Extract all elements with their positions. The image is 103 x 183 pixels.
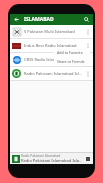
button[interactable]: Stop xyxy=(84,155,92,163)
staticText: Radio Pakistani Islamabad xyxy=(21,154,61,158)
button[interactable]: Radio Pakistani Islamabad xyxy=(10,153,93,164)
button[interactable]: Back xyxy=(12,15,21,24)
button[interactable]: Radio Pakistani Islamabad Islamabad xyxy=(10,67,93,80)
button[interactable]: CBSS Radio Islamabad xyxy=(10,53,93,66)
staticText: ISLAMABAD xyxy=(24,16,54,23)
staticText: Radio Pakistani Islamabad Islamabad xyxy=(21,158,84,163)
button[interactable]: Indus Best Radio Islamabad xyxy=(10,39,93,52)
staticText: Indus Best Radio Islamabad xyxy=(24,43,84,48)
staticText: Add to Favorite xyxy=(57,50,83,55)
button[interactable]: Search xyxy=(82,15,91,24)
staticText: Radio Pakistani Islamabad Islamabad xyxy=(24,71,84,76)
button[interactable]: Add to Favorite xyxy=(54,48,90,57)
staticText: Share to Friends xyxy=(57,59,85,64)
button[interactable]: Share to Friends xyxy=(54,57,90,66)
button[interactable]: More options xyxy=(84,39,91,52)
button[interactable]: More options xyxy=(84,53,91,66)
button[interactable]: More options xyxy=(84,25,91,38)
staticText: 5 Pakistan Multi Islamabad xyxy=(24,29,84,34)
staticText: CBSS Radio Islamabad xyxy=(24,57,84,62)
button[interactable]: More options xyxy=(84,67,91,80)
button[interactable]: 5 Pakistan Multi Islamabad xyxy=(10,25,93,38)
